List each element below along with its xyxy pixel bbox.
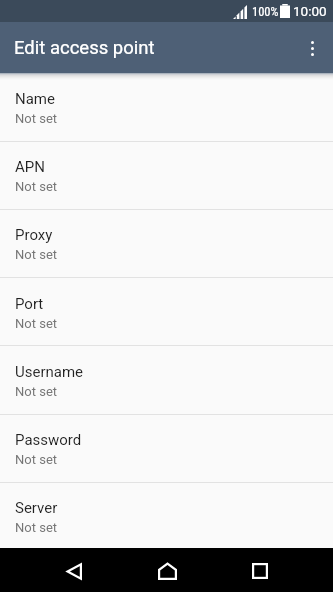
button[interactable]: Back — [50, 549, 98, 592]
button[interactable]: Proxy — [0, 209, 333, 276]
button[interactable]: Server — [0, 482, 333, 548]
staticText: Name — [15, 90, 55, 108]
button[interactable]: Username — [0, 346, 333, 413]
button[interactable]: Recent apps — [236, 549, 284, 592]
button[interactable]: More options — [297, 25, 327, 71]
button[interactable]: Port — [0, 278, 333, 345]
button[interactable]: Name — [0, 73, 333, 140]
staticText: Port — [15, 295, 44, 313]
staticText: Not set — [15, 384, 58, 399]
staticText: Username — [15, 363, 84, 381]
staticText: Not set — [15, 111, 58, 126]
staticText: APN — [15, 158, 45, 176]
staticText: Not set — [15, 316, 58, 331]
staticText: Password — [15, 431, 82, 449]
staticText: Not set — [15, 247, 58, 262]
staticText: 100% — [252, 4, 279, 19]
staticText: 10:00 — [293, 3, 327, 19]
staticText: Not set — [15, 520, 58, 535]
button[interactable]: APN — [0, 141, 333, 208]
staticText: Server — [15, 499, 58, 517]
button[interactable]: Password — [0, 414, 333, 481]
staticText: Edit access point — [14, 37, 155, 59]
staticText: Not set — [15, 179, 58, 194]
staticText: Not set — [15, 452, 58, 467]
staticText: Proxy — [15, 226, 53, 244]
button[interactable]: Home — [143, 549, 191, 592]
